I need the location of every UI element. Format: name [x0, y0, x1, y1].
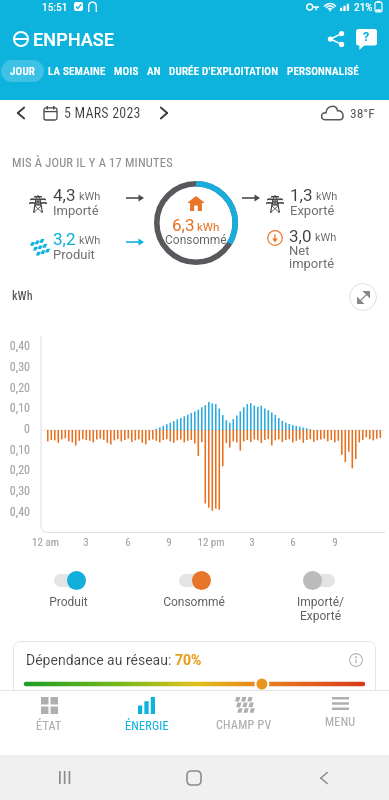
staticText: 0,40 [9, 505, 30, 519]
staticText: 3,0 [289, 226, 312, 246]
button[interactable]: Consommé [131, 571, 257, 609]
staticText: MOIS [114, 65, 139, 78]
staticText: 3 [249, 536, 255, 549]
staticText: Produit [49, 595, 88, 609]
staticText: 3 [83, 536, 89, 549]
staticText: 5 MARS 2023 [64, 105, 141, 121]
staticText: kWh [316, 190, 338, 203]
staticText: 12 am [32, 536, 59, 549]
staticText: 21% [354, 0, 373, 13]
staticText: ? [363, 29, 370, 44]
staticText: 6 [125, 536, 131, 549]
staticText: DURÉE D'EXPLOITATION [169, 65, 279, 78]
staticText: 0,10 [9, 443, 30, 457]
staticText: 9 [166, 536, 172, 549]
staticText: 6,3 [172, 215, 195, 235]
button[interactable]: Importé/ Exporté [257, 571, 383, 623]
staticText: MIS À JOUR IL Y A 17 MINUTES [12, 155, 173, 170]
staticText: 3,2 [53, 229, 76, 249]
staticText: 0,20 [9, 463, 30, 477]
staticText: kWh [79, 190, 101, 203]
staticText: LA SEMAINE [48, 65, 106, 78]
staticText: Consommé [163, 595, 225, 609]
button[interactable]: MOIS [110, 60, 143, 82]
button[interactable]: Dépendance au réseau: [13, 641, 376, 696]
staticText: 12 pm [197, 536, 225, 549]
staticText: 0,40 [9, 339, 30, 353]
staticText: 0,30 [9, 360, 30, 374]
staticText: 0,30 [9, 484, 30, 498]
staticText: ÉTAT [36, 719, 62, 733]
button[interactable]: JOUR [1, 60, 44, 82]
button[interactable]: CHAMP PV [195, 691, 292, 755]
staticText: kWh [315, 231, 337, 244]
staticText: 70% [175, 652, 202, 668]
staticText: MENU [325, 715, 356, 729]
staticText: 0,20 [9, 381, 30, 395]
button[interactable]: LA SEMAINE [44, 60, 110, 82]
button[interactable]: Share [322, 25, 350, 53]
button[interactable]: MENU [292, 691, 389, 755]
staticText: CHAMP PV [216, 718, 272, 732]
button[interactable]: Previous day [8, 100, 34, 126]
staticText: 38°F [350, 105, 375, 121]
staticText: 1,3 [290, 185, 313, 205]
button[interactable]: PERSONNALISÉ [283, 60, 363, 82]
button[interactable]: Expand chart [349, 283, 377, 311]
staticText: 15:51 [42, 0, 68, 13]
button[interactable]: AN [143, 60, 165, 82]
staticText: 0 [24, 422, 30, 436]
staticText: Net importé [289, 243, 335, 271]
staticText: ÉNERGIE [125, 719, 169, 733]
staticText: Consommé [165, 233, 227, 247]
button[interactable]: Produit [6, 571, 131, 609]
button[interactable]: ÉTAT [0, 691, 98, 755]
staticText: kWh [79, 234, 101, 247]
staticText: 9 [332, 536, 338, 549]
staticText: PERSONNALISÉ [287, 65, 359, 78]
staticText: ENPHASE [33, 29, 115, 50]
staticText: 4,3 [53, 185, 76, 205]
staticText: Exporté [290, 203, 335, 218]
button[interactable]: Help [356, 29, 377, 50]
staticText: AN [147, 65, 161, 78]
staticText: Importé/ Exporté [297, 595, 344, 623]
staticText: 6 [290, 536, 296, 549]
button[interactable]: Next day [151, 100, 177, 126]
staticText: 0,10 [9, 401, 30, 415]
staticText: Produit [53, 247, 95, 262]
staticText: kWh [12, 289, 33, 303]
staticText: JOUR [10, 65, 35, 78]
staticText: kWh [197, 220, 220, 233]
button[interactable]: ÉNERGIE [98, 691, 195, 755]
staticText: Importé [53, 203, 99, 218]
staticText: Dépendance au réseau: [26, 652, 175, 668]
button[interactable]: DURÉE D'EXPLOITATION [165, 60, 283, 82]
